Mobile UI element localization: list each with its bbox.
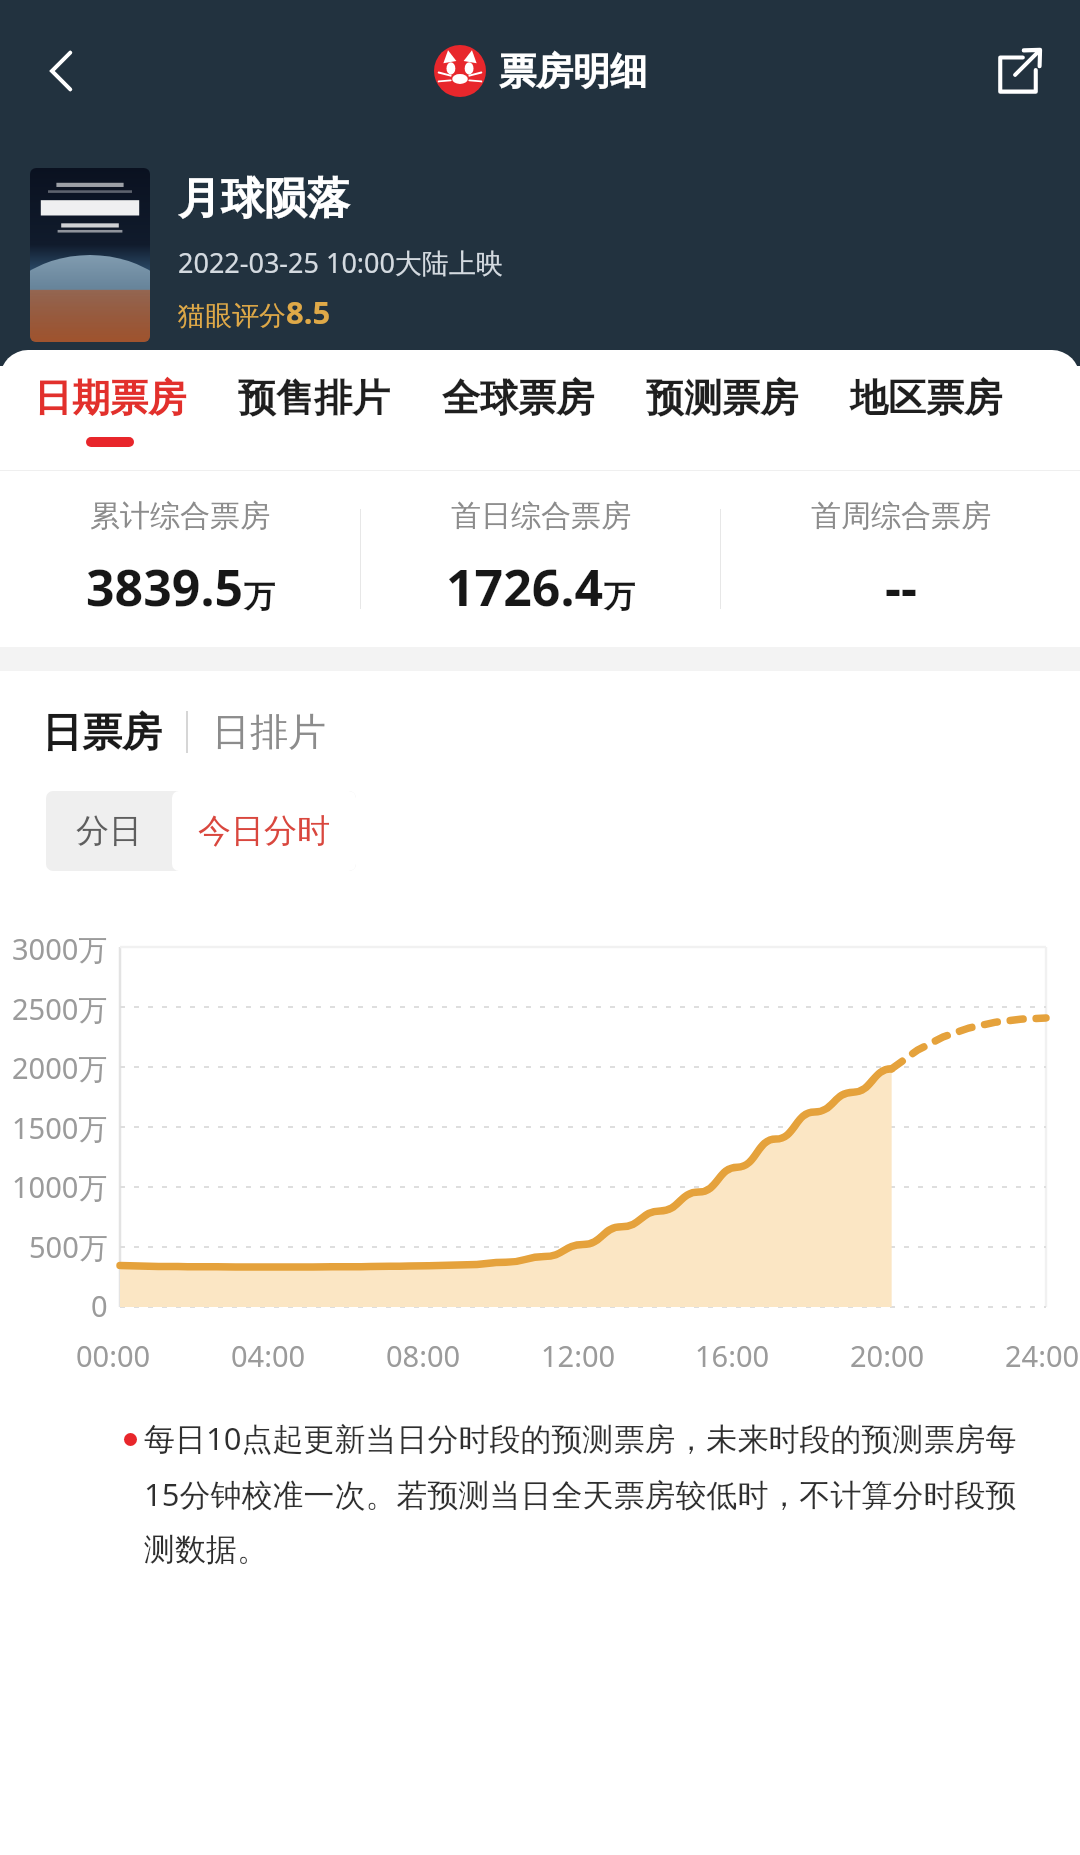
- staticText: 00:00: [76, 1336, 151, 1375]
- button[interactable]: 分日: [46, 791, 172, 871]
- button[interactable]: 累计综合票房: [0, 471, 360, 647]
- staticText: 08:00: [386, 1336, 461, 1375]
- staticText: 1500万: [12, 1108, 108, 1148]
- staticText: 万: [244, 577, 275, 616]
- button[interactable]: 首周综合票房: [721, 471, 1080, 647]
- staticText: 万: [604, 577, 635, 616]
- staticText: 2022-03-25 10:00大陆上映: [178, 244, 503, 281]
- staticText: 3000万: [12, 929, 108, 969]
- button[interactable]: 日期票房: [8, 366, 212, 455]
- button[interactable]: 全球票房: [416, 366, 620, 455]
- button[interactable]: Share: [976, 29, 1060, 113]
- button[interactable]: 票房明细: [434, 45, 647, 97]
- staticText: 20:00: [850, 1336, 925, 1375]
- staticText: 日票房: [42, 707, 162, 757]
- staticText: 日期票房: [34, 374, 186, 422]
- staticText: 今日分时: [198, 810, 330, 852]
- staticText: 每日10点起更新当日分时段的预测票房，未来时段的预测票房每15分钟校准一次。若预…: [144, 1417, 1022, 1570]
- staticText: 8.5: [286, 291, 331, 333]
- staticText: --: [885, 553, 917, 621]
- staticText: 24:00: [1005, 1336, 1080, 1375]
- button[interactable]: Back: [20, 29, 104, 113]
- staticText: 2500万: [12, 989, 108, 1029]
- staticText: 月球陨落: [178, 172, 350, 226]
- staticText: 猫眼评分: [178, 299, 286, 333]
- button[interactable]: 日票房: [42, 707, 162, 757]
- staticText: 500万: [29, 1227, 108, 1267]
- staticText: 累计综合票房: [90, 497, 270, 535]
- button[interactable]: 今日分时: [172, 791, 356, 871]
- button[interactable]: [30, 168, 150, 342]
- staticText: 地区票房: [850, 374, 1002, 422]
- staticText: 分日: [76, 810, 142, 852]
- button[interactable]: 预测票房: [620, 366, 824, 455]
- staticText: 12:00: [541, 1336, 616, 1375]
- staticText: 首周综合票房: [811, 497, 991, 535]
- staticText: 日排片: [212, 708, 326, 756]
- staticText: 04:00: [231, 1336, 306, 1375]
- staticText: 1726.4: [446, 553, 604, 621]
- staticText: 0: [91, 1286, 108, 1325]
- staticText: 预售排片: [238, 374, 390, 422]
- staticText: 1000万: [12, 1167, 108, 1207]
- staticText: 3839.5: [86, 553, 244, 621]
- staticText: 首日综合票房: [451, 497, 631, 535]
- staticText: 16:00: [695, 1336, 770, 1375]
- staticText: 预测票房: [646, 374, 798, 422]
- button[interactable]: 日排片: [212, 708, 326, 756]
- staticText: 票房明细: [499, 48, 647, 95]
- staticText: 2000万: [12, 1048, 108, 1088]
- button[interactable]: 预售排片: [212, 366, 416, 455]
- staticText: 全球票房: [442, 374, 594, 422]
- button[interactable]: 首日综合票房: [361, 471, 720, 647]
- button[interactable]: 地区票房: [824, 366, 1028, 455]
